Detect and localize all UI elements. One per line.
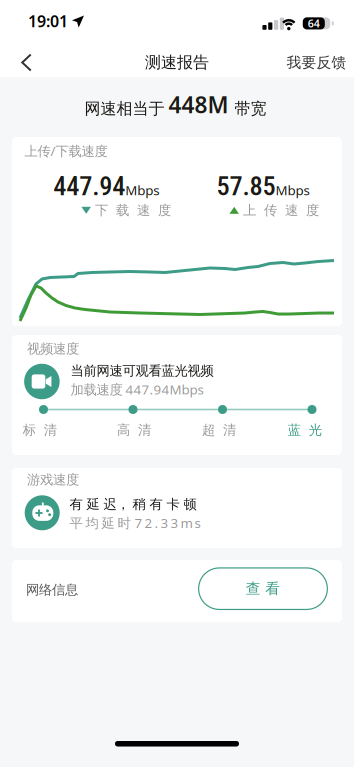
staticText: 57.85Mbps <box>216 171 309 201</box>
staticText: 高 清 <box>117 422 151 438</box>
staticText: 网速相当于 448M 带宽 <box>84 89 266 119</box>
staticText: 19:01 <box>28 10 68 32</box>
staticText: 当前网速可观看蓝光视频 <box>71 362 214 379</box>
staticText: 看 <box>265 580 280 598</box>
staticText: 下 载 速 度 <box>95 202 171 218</box>
staticText: 有 延 迟， 稍 有 卡 顿 <box>70 496 197 512</box>
button[interactable] <box>7 46 41 78</box>
staticText: 蓝 光 <box>288 422 322 438</box>
staticText: 447.94Mbps <box>53 171 159 201</box>
staticText: 平 均 延 时 7 2 . 3 3 m s <box>70 514 201 532</box>
staticText: 上传/下载速度 <box>24 142 107 160</box>
staticText: 64 <box>308 16 320 30</box>
staticText: 上 传 速 度 <box>243 202 319 218</box>
button[interactable]: 我要反馈 <box>286 47 346 77</box>
staticText: 游戏速度 <box>27 471 79 488</box>
staticText: 我要反馈 <box>286 53 346 71</box>
staticText: 视频速度 <box>27 340 79 357</box>
staticText: 标 清 <box>23 422 57 438</box>
staticText: 测速报告 <box>145 53 209 72</box>
staticText: 加载速度 447.94Mbps <box>71 380 204 398</box>
staticText: 超 清 <box>202 422 236 438</box>
button[interactable]: 查 <box>199 568 327 609</box>
staticText: 网络信息 <box>26 581 78 598</box>
staticText: 查 <box>246 580 261 598</box>
